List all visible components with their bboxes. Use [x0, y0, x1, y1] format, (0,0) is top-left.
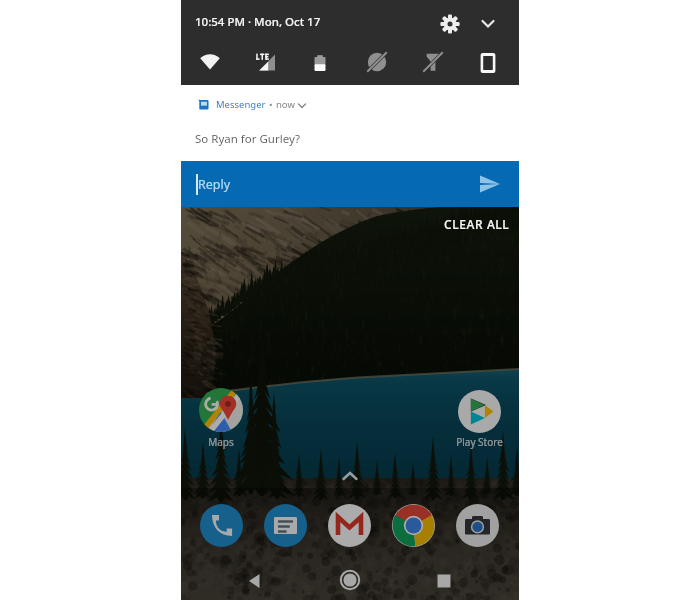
- staticText: CLEAR ALL: [444, 216, 510, 232]
- button[interactable]: Expand quick settings: [476, 11, 500, 35]
- button[interactable]: Back: [243, 569, 267, 593]
- button[interactable]: CLEAR ALL: [436, 211, 518, 237]
- button[interactable]: Auto rotate: [477, 51, 499, 73]
- button[interactable]: Send: [477, 171, 503, 197]
- staticText: Messenger: [216, 98, 266, 111]
- button[interactable]: Do not disturb: [366, 51, 388, 73]
- button[interactable]: Recent apps: [432, 569, 456, 593]
- staticText: So Ryan for Gurley?: [195, 131, 301, 147]
- button[interactable]: Play Store: [439, 390, 519, 449]
- staticText: Play Store: [456, 435, 503, 449]
- button[interactable]: Battery: [309, 51, 331, 73]
- button[interactable]: Camera: [456, 504, 499, 547]
- staticText: Reply: [198, 176, 231, 193]
- staticText: now: [276, 98, 295, 111]
- button[interactable]: All apps: [339, 466, 361, 488]
- button[interactable]: Messenger: [181, 85, 519, 161]
- button[interactable]: Mobile data: [254, 51, 276, 73]
- button[interactable]: Settings: [438, 12, 461, 35]
- button[interactable]: Chrome: [392, 504, 435, 547]
- button[interactable]: Flashlight: [422, 51, 444, 73]
- button[interactable]: Maps: [181, 388, 261, 449]
- button[interactable]: Phone: [200, 504, 243, 547]
- button[interactable]: Messages: [264, 504, 307, 547]
- button[interactable]: Gmail: [328, 504, 371, 547]
- staticText: 10:54 PM · Mon, Oct 17: [195, 14, 321, 30]
- staticText: Maps: [208, 435, 234, 449]
- button[interactable]: Home: [338, 568, 362, 592]
- staticText: •: [269, 98, 273, 111]
- button[interactable]: Wi-Fi: [199, 51, 221, 73]
- button[interactable]: Reply: [181, 161, 519, 207]
